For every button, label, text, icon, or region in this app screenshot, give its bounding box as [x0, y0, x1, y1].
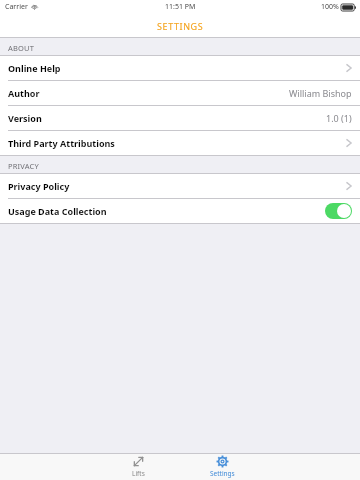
button[interactable]: Third Party Attributions: [0, 131, 360, 155]
staticText: Third Party Attributions: [8, 137, 115, 149]
staticText: ABOUT: [8, 43, 35, 53]
button[interactable]: Author: [0, 81, 360, 105]
button[interactable]: Usage Data Collection: [0, 199, 360, 223]
staticText: Privacy Policy: [8, 180, 70, 192]
button[interactable]: Version: [0, 106, 360, 130]
staticText: 1.0 (1): [326, 112, 352, 124]
staticText: Carrier: [5, 2, 28, 12]
staticText: William Bishop: [289, 87, 352, 99]
button[interactable]: Usage Data Collection toggle, on: [325, 203, 352, 219]
button[interactable]: Online Help: [0, 56, 360, 80]
staticText: Usage Data Collection: [8, 205, 107, 217]
button[interactable]: Settings tab: [197, 453, 247, 480]
staticText: Settings: [210, 469, 235, 478]
staticText: Online Help: [8, 62, 61, 74]
staticText: 11:51 PM: [165, 2, 196, 12]
staticText: PRIVACY: [8, 161, 39, 171]
staticText: Version: [8, 112, 42, 124]
staticText: Lifts: [132, 469, 145, 478]
staticText: Author: [8, 87, 40, 99]
staticText: SETTINGS: [157, 20, 204, 32]
staticText: 100%: [321, 2, 339, 12]
button[interactable]: Privacy Policy: [0, 174, 360, 198]
button[interactable]: Lifts tab: [113, 453, 163, 480]
